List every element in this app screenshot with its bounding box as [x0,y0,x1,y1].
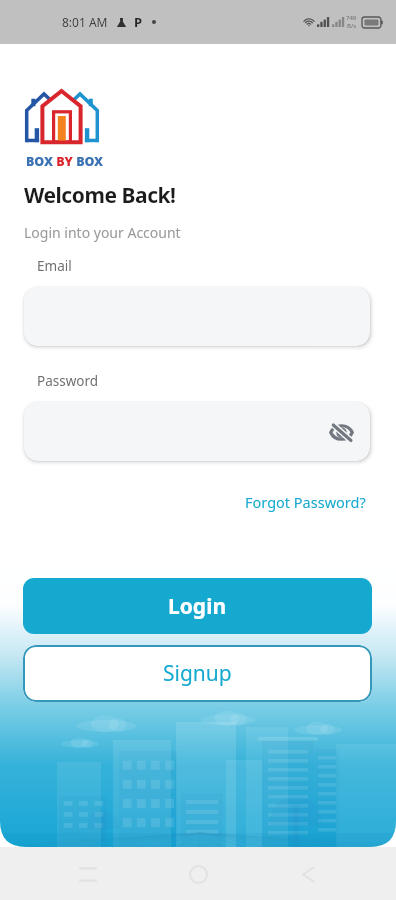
staticText: BOX [73,153,104,170]
staticText: BY [53,153,73,170]
staticText: Signup [163,659,232,688]
button[interactable]: Show password [325,416,357,448]
staticText: Password [37,372,99,390]
button[interactable]: Login [23,578,372,634]
staticText: B/s [347,22,357,30]
staticText: 8:01 AM [62,14,108,30]
staticText: 749 [346,14,357,22]
staticText: Login into your Account [24,223,181,242]
button[interactable]: Signup [23,645,372,702]
staticText: Email [37,257,72,275]
staticText: P [134,13,143,31]
staticText: BOX [26,153,53,170]
staticText: Welcome Back! [24,181,176,210]
button[interactable]: Forgot Password? [245,492,396,512]
staticText: Login [168,592,227,621]
button[interactable]: Password input [24,402,370,461]
